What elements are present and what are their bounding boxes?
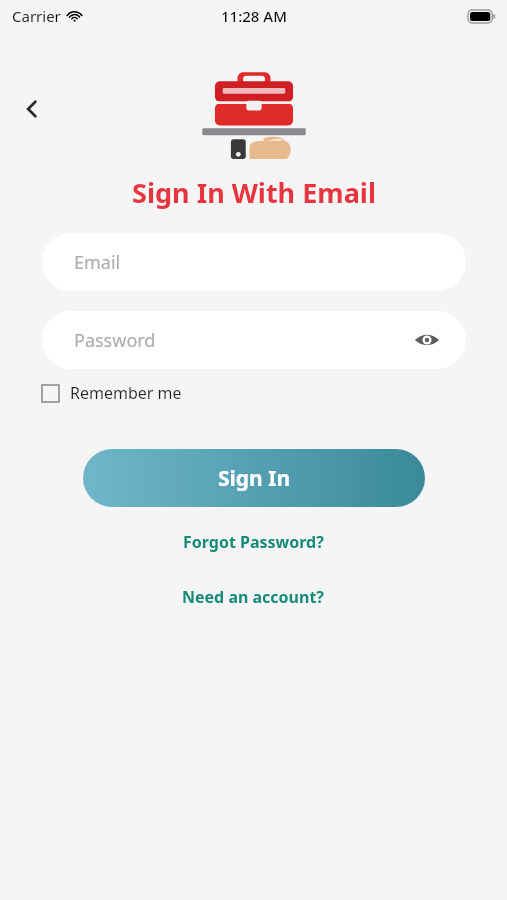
staticText: Email — [74, 250, 121, 275]
button[interactable]: Remember me — [42, 382, 507, 404]
button[interactable]: Sign In — [83, 449, 425, 507]
button[interactable]: Need an account? — [170, 578, 337, 616]
button[interactable]: Password — [42, 311, 466, 369]
button[interactable]: Forgot Password? — [171, 523, 336, 561]
staticText: Need an account? — [182, 586, 325, 608]
staticText: Remember me — [70, 382, 182, 404]
button[interactable]: Show password — [410, 323, 444, 357]
staticText: Password — [74, 328, 156, 353]
button[interactable]: Email — [42, 233, 466, 291]
staticText: Sign In With Email — [132, 174, 376, 211]
staticText: 11:28 AM — [221, 6, 287, 26]
staticText: Forgot Password? — [183, 531, 324, 553]
button[interactable]: Back — [8, 85, 56, 133]
staticText: Carrier — [12, 6, 61, 26]
staticText: Sign In — [218, 464, 291, 493]
